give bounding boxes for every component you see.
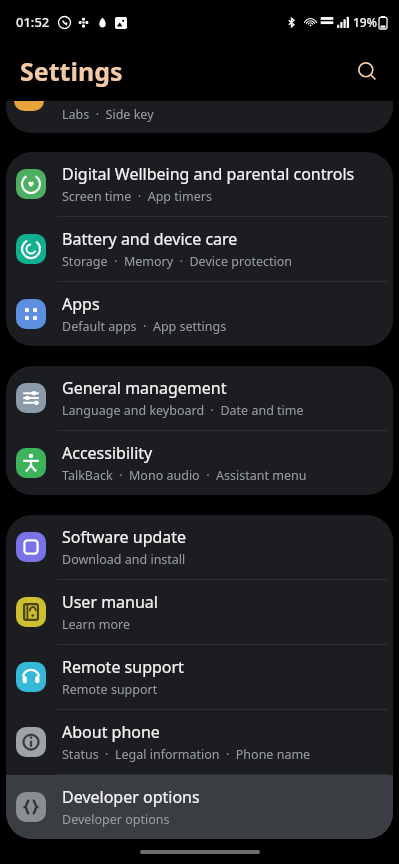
button[interactable]: General management [6, 366, 393, 430]
button[interactable]: Remote support [6, 645, 393, 709]
staticText: Accessibility [62, 442, 153, 464]
button[interactable]: Search [345, 49, 389, 93]
staticText: General management [62, 377, 227, 399]
staticText: Default apps · App settings [62, 318, 227, 335]
staticText: Remote support [62, 656, 184, 678]
staticText: User manual [62, 591, 158, 613]
button[interactable]: Apps [6, 282, 393, 346]
staticText: Developer options [62, 811, 170, 828]
staticText: Learn more [62, 616, 130, 633]
staticText: Digital Wellbeing and parental controls [62, 163, 355, 185]
staticText: Software update [62, 526, 187, 548]
staticText: Status · Legal information · Phone name [62, 746, 311, 763]
button[interactable]: Battery and device care [6, 217, 393, 281]
staticText: Language and keyboard · Date and time [62, 402, 304, 419]
button[interactable]: User manual [6, 580, 393, 644]
button[interactable]: Labs · Side key [6, 101, 393, 133]
staticText: Remote support [62, 681, 158, 698]
button[interactable]: Digital Wellbeing and parental controls [6, 152, 393, 216]
staticText: Developer options [62, 786, 200, 808]
staticText: Storage · Memory · Device protection [62, 253, 293, 270]
staticText: TalkBack · Mono audio · Assistant menu [62, 467, 307, 484]
button[interactable]: Accessibility [6, 431, 393, 495]
staticText: Apps [62, 293, 100, 315]
button[interactable]: Developer options [6, 775, 393, 839]
staticText: About phone [62, 721, 160, 743]
staticText: 19% [353, 14, 377, 30]
staticText: Download and install [62, 551, 186, 568]
staticText: Screen time · App timers [62, 188, 212, 205]
button[interactable]: Software update [6, 515, 393, 579]
staticText: Settings [20, 54, 123, 88]
staticText: Battery and device care [62, 228, 238, 250]
staticText: Labs · Side key [62, 106, 154, 123]
staticText: 01:52 [16, 13, 50, 31]
button[interactable]: About phone [6, 710, 393, 774]
